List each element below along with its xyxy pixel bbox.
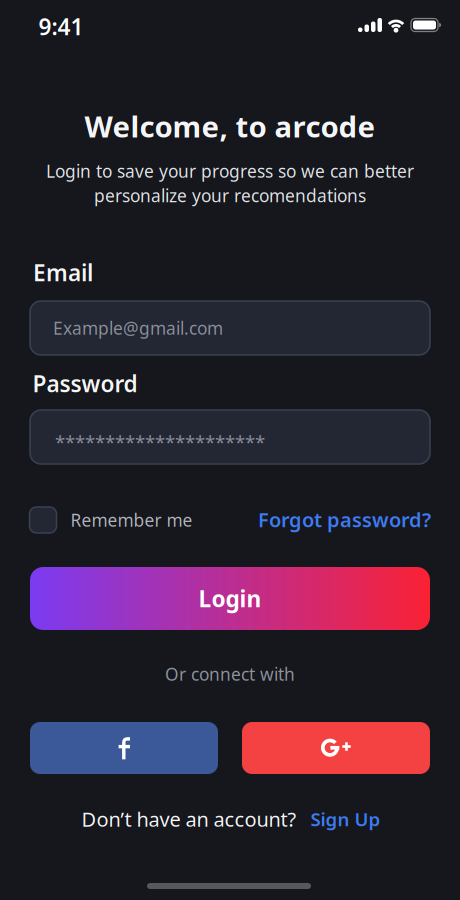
- button[interactable]: Remember me: [29, 507, 192, 533]
- staticText: Or connect with: [165, 662, 295, 685]
- staticText: Login: [198, 583, 261, 613]
- button[interactable]: Example@gmail.com: [30, 301, 430, 355]
- staticText: Don’t have an account?: [81, 806, 296, 832]
- staticText: 9:41: [38, 11, 83, 41]
- staticText: Welcome, to arcode: [84, 106, 375, 145]
- staticText: Email: [33, 257, 93, 287]
- button[interactable]: [30, 722, 218, 774]
- button[interactable]: *********************: [30, 410, 430, 464]
- button[interactable]: Sign Up: [310, 807, 380, 831]
- staticText: Forgot password?: [258, 506, 431, 533]
- staticText: Sign Up: [310, 807, 380, 831]
- staticText: *********************: [55, 430, 265, 454]
- staticText: Login to save your progress so we can be…: [46, 159, 414, 182]
- button[interactable]: Login: [30, 567, 430, 630]
- staticText: Remember me: [70, 508, 192, 531]
- staticText: Example@gmail.com: [53, 316, 223, 339]
- staticText: personalize your recomendations: [94, 184, 366, 207]
- button[interactable]: Forgot password?: [258, 506, 431, 533]
- button[interactable]: [242, 722, 430, 774]
- staticText: Password: [32, 368, 137, 398]
